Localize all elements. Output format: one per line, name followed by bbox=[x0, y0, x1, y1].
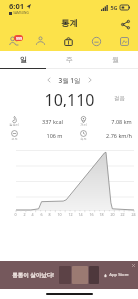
staticText: 337 kcal bbox=[42, 118, 63, 125]
staticText: 거리 bbox=[80, 123, 87, 127]
staticText: 6:01 bbox=[9, 1, 24, 11]
staticText: 8 bbox=[48, 212, 51, 217]
button[interactable]: 오픈채팅 bbox=[82, 32, 110, 51]
staticText: 24 bbox=[131, 212, 136, 217]
button[interactable]: 더보기 bbox=[110, 32, 138, 51]
staticText: 6 bbox=[40, 212, 43, 217]
button[interactable]: 친구 bbox=[0, 32, 27, 51]
staticText: 999 bbox=[16, 36, 22, 41]
staticText: 10,110 bbox=[44, 89, 95, 107]
button[interactable]: 통통이 살아났다! bbox=[0, 261, 138, 289]
staticText: 걸음 bbox=[114, 95, 125, 102]
staticText: 0 bbox=[14, 212, 17, 217]
button[interactable]: 월 bbox=[92, 51, 138, 68]
button[interactable]: 고도 bbox=[0, 128, 69, 142]
staticText: 2.76 km/h bbox=[106, 132, 132, 139]
button[interactable]: 공유 bbox=[118, 17, 132, 31]
staticText: 2 bbox=[23, 212, 26, 217]
button[interactable]: 쇼핑 bbox=[54, 32, 82, 51]
staticText: 12 bbox=[68, 212, 73, 217]
staticText: 통통이 살아났다! bbox=[12, 271, 54, 279]
staticText: 16 bbox=[89, 212, 94, 217]
staticText: 고도 bbox=[11, 137, 18, 141]
button[interactable]: 광고 닫기 bbox=[131, 263, 136, 268]
staticText: 7.08 km bbox=[111, 118, 132, 125]
button[interactable]: 이전 날짜 bbox=[44, 75, 54, 85]
staticText: 속도 bbox=[80, 137, 87, 141]
button[interactable]: 채팅 bbox=[27, 32, 54, 51]
staticText: 18 bbox=[99, 212, 104, 217]
staticText: 22 bbox=[120, 212, 125, 217]
button[interactable]: 일 bbox=[0, 51, 46, 68]
staticText: 20 bbox=[110, 212, 115, 217]
staticText: 14 bbox=[78, 212, 83, 217]
staticText: 통계 bbox=[61, 18, 78, 29]
staticText: 3월 1일 bbox=[58, 76, 81, 85]
staticText: SAMSUNG bbox=[13, 11, 29, 15]
staticText: 4 bbox=[31, 212, 34, 217]
staticText: 106 m bbox=[46, 132, 63, 139]
staticText: 월 bbox=[112, 55, 119, 64]
staticText: 10 bbox=[57, 212, 62, 217]
button[interactable]: 다음 날짜 bbox=[85, 75, 95, 85]
button[interactable]: 속도 bbox=[69, 128, 138, 142]
staticText: 5G bbox=[110, 4, 118, 11]
staticText: 주 bbox=[66, 55, 73, 64]
staticText: 일 bbox=[20, 55, 27, 64]
staticText: 칼로리 bbox=[9, 123, 19, 127]
button[interactable]: 거리 bbox=[69, 114, 138, 128]
staticText: App Store bbox=[109, 272, 129, 278]
button[interactable]: 칼로리 bbox=[0, 114, 69, 128]
button[interactable]: 주 bbox=[46, 51, 92, 68]
